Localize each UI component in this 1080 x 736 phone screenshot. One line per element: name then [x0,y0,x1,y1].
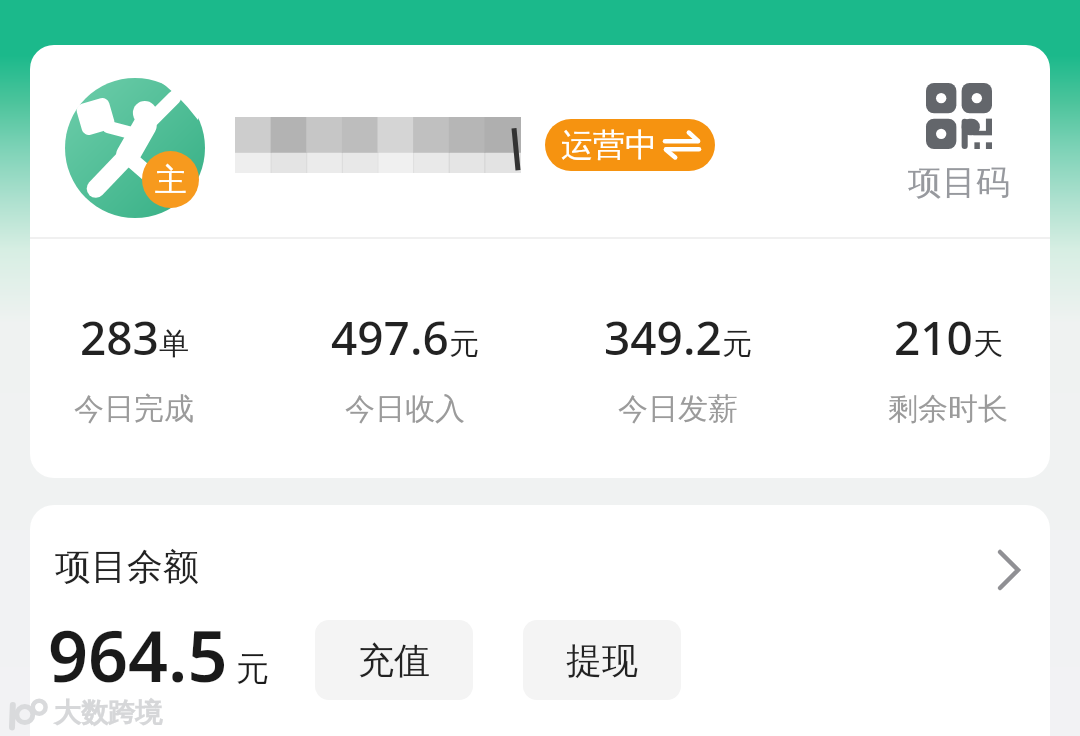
staticText: 今日发薪 [618,390,738,428]
staticText: 349.2 [604,306,722,369]
button[interactable]: 运营中 [561,119,699,171]
staticText: 大数跨境 [54,696,162,730]
button[interactable]: 项目码 [908,83,1010,204]
staticText: 元 [722,325,752,363]
staticText: 元 [449,325,479,363]
staticText: 剩余时长 [888,390,1008,428]
staticText: 项目码 [908,161,1010,204]
staticText: 今日收入 [345,390,465,428]
staticText: 283 [80,306,159,369]
button[interactable]: 提现 [523,620,681,700]
staticText: 210 [894,306,973,369]
staticText: 497.6 [331,306,449,369]
staticText: 运营中 [561,125,657,165]
staticText: 今日完成 [74,390,194,428]
staticText: 964.5 [48,607,228,702]
button[interactable]: 项目余额 [30,505,1050,736]
staticText: 项目余额 [55,544,199,589]
staticText: 天 [973,325,1003,363]
staticText: 单 [159,325,189,363]
button[interactable]: 充值 [315,620,473,700]
staticText: 提现 [566,638,638,683]
staticText: 元 [236,648,269,690]
button[interactable]: 主 [142,151,199,208]
staticText: 主 [155,160,187,200]
staticText: 充值 [358,638,430,683]
